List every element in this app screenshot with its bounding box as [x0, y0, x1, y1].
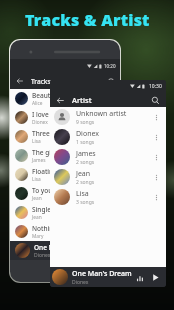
staticText: Lisa — [32, 176, 41, 183]
staticText: The gift — [32, 148, 56, 157]
staticText: Jean — [32, 195, 42, 202]
staticText: One Man's Dream — [34, 243, 90, 252]
staticText: Floating — [32, 167, 58, 176]
staticText: To you — [32, 186, 53, 195]
button[interactable]: Play — [150, 272, 161, 283]
staticText: 9 songs — [76, 119, 95, 126]
button[interactable]: One Man's Dream — [10, 241, 120, 260]
button[interactable]: Jean — [50, 167, 166, 187]
button[interactable]: The gift — [10, 146, 120, 165]
staticText: Lisa — [76, 189, 89, 199]
button[interactable]: One Man's Dream — [50, 267, 166, 287]
button[interactable]: More options — [151, 192, 162, 203]
staticText: Nothing — [32, 224, 58, 233]
button[interactable]: Floating — [10, 165, 120, 184]
staticText: Tracks — [31, 77, 51, 86]
staticText: Unknown artist — [76, 109, 127, 119]
staticText: Dionex — [72, 279, 89, 286]
button[interactable]: Single — [10, 203, 120, 222]
button[interactable]: Search — [150, 95, 161, 106]
button[interactable]: More options — [151, 112, 162, 123]
staticText: 1 songs — [76, 139, 95, 146]
staticText: I love rain — [32, 110, 63, 119]
staticText: Dionex — [76, 129, 99, 139]
button[interactable]: Equalizer — [134, 272, 145, 283]
staticText: 2 songs — [76, 179, 95, 186]
staticText: Dionex — [32, 119, 48, 126]
staticText: James — [76, 149, 96, 159]
staticText: Single — [32, 205, 51, 214]
other: Back — [16, 77, 24, 85]
button[interactable]: Three rivers — [10, 127, 120, 146]
staticText: Jean — [32, 214, 42, 221]
button[interactable]: Headphones — [106, 76, 116, 86]
staticText: Jean — [76, 169, 91, 179]
button[interactable]: Lisa — [50, 187, 166, 207]
staticText: Three rivers — [32, 129, 70, 138]
staticText: Mary — [32, 233, 44, 240]
staticText: One Man's Dream — [72, 269, 132, 279]
button[interactable]: To you — [10, 184, 120, 203]
button[interactable]: More options — [151, 152, 162, 163]
button[interactable]: I love rain — [10, 108, 120, 127]
staticText: Alice — [32, 100, 43, 107]
staticText: Beautiful — [32, 91, 61, 100]
staticText: 2 songs — [76, 159, 95, 166]
button[interactable]: More options — [151, 172, 162, 183]
other: Back — [56, 96, 65, 105]
button[interactable]: Dionex — [50, 127, 166, 147]
staticText: 10:20 — [104, 63, 116, 69]
button[interactable]: More options — [151, 132, 162, 143]
button[interactable]: James — [50, 147, 166, 167]
staticText: Artist — [72, 95, 92, 105]
staticText: 10:30 — [149, 83, 162, 90]
staticText: James — [32, 157, 46, 164]
staticText: Tracks & Artist — [25, 9, 150, 31]
button[interactable]: Beautiful — [10, 89, 120, 108]
button[interactable]: Nothing — [10, 222, 120, 241]
staticText: 3 songs — [76, 199, 95, 206]
staticText: Dionex — [34, 252, 51, 259]
button[interactable]: Unknown artist — [50, 107, 166, 127]
staticText: Lisa — [32, 138, 41, 145]
